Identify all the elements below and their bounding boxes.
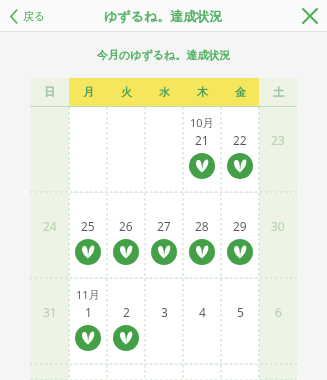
staticText: 25 [81, 218, 95, 234]
button[interactable]: 30 [259, 193, 297, 278]
staticText: 今月のゆずるね。達成状況 [0, 48, 327, 62]
staticText: 10月 [190, 115, 214, 130]
staticText: 土 [273, 85, 284, 99]
staticText: 2 [123, 304, 130, 320]
button[interactable] [107, 107, 145, 192]
staticText: 22 [233, 132, 247, 148]
staticText: 水 [159, 85, 170, 99]
button[interactable]: 12 [221, 365, 259, 380]
staticText: 6 [275, 304, 282, 320]
button[interactable]: 7 [30, 365, 69, 380]
button[interactable]: 23 [259, 107, 297, 192]
button[interactable]: 27 [145, 193, 183, 278]
staticText: 29 [233, 218, 247, 234]
button[interactable]: 5 [221, 279, 259, 364]
button[interactable]: 24 [30, 193, 69, 278]
button[interactable] [69, 107, 107, 192]
staticText: 11月 [76, 287, 100, 302]
staticText: 金 [235, 85, 246, 99]
staticText: 5 [237, 304, 244, 320]
button[interactable]: 31 [30, 279, 69, 364]
staticText: 24 [43, 218, 57, 234]
button[interactable]: 戻る [0, 5, 54, 27]
staticText: 3 [161, 304, 168, 320]
staticText: 31 [43, 304, 57, 320]
button[interactable]: 11月 [69, 279, 107, 364]
button[interactable]: 28 [183, 193, 221, 278]
button[interactable]: 6 [259, 279, 297, 364]
button[interactable]: Close [293, 3, 327, 29]
button[interactable]: 9 [107, 365, 145, 380]
button[interactable]: 10 [145, 365, 183, 380]
button[interactable]: 26 [107, 193, 145, 278]
button[interactable]: 22 [221, 107, 259, 192]
button[interactable]: 25 [69, 193, 107, 278]
staticText: 23 [271, 132, 285, 148]
button[interactable]: 8 [69, 365, 107, 380]
button[interactable]: 2 [107, 279, 145, 364]
staticText: 21 [195, 132, 209, 148]
button[interactable]: 4 [183, 279, 221, 364]
button[interactable]: 10月 [183, 107, 221, 192]
staticText: 27 [157, 218, 171, 234]
button[interactable]: 11 [183, 365, 221, 380]
staticText: 4 [199, 304, 206, 320]
staticText: 木 [197, 85, 208, 99]
staticText: 30 [271, 218, 285, 234]
button[interactable]: 3 [145, 279, 183, 364]
staticText: 1 [85, 304, 92, 320]
staticText: 26 [119, 218, 133, 234]
staticText: 28 [195, 218, 209, 234]
button[interactable]: 13 [259, 365, 297, 380]
button[interactable]: 29 [221, 193, 259, 278]
button[interactable] [145, 107, 183, 192]
staticText: 月 [83, 85, 94, 99]
staticText: 日 [44, 85, 55, 99]
staticText: 戻る [23, 9, 46, 23]
staticText: ゆずるね。達成状況 [104, 8, 223, 24]
staticText: 火 [121, 85, 132, 99]
